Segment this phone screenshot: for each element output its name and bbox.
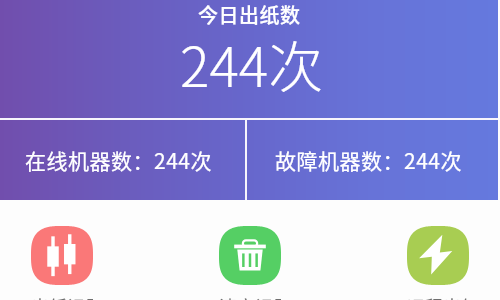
staticText: 244次 — [180, 23, 324, 103]
staticText: 清空记录 — [219, 293, 281, 300]
button[interactable]: 故障机器数：244次 — [247, 120, 498, 200]
button[interactable]: 远程出纸 — [407, 200, 469, 300]
staticText: 出纸记录 — [31, 293, 93, 300]
staticText: 今日出纸数 — [198, 0, 301, 29]
staticText: 远程出纸 — [407, 293, 469, 300]
button[interactable]: 在线机器数：244次 — [0, 120, 245, 200]
staticText: 在线机器数：244次 — [25, 145, 212, 175]
button[interactable]: 清空记录 — [219, 200, 281, 300]
staticText: 故障机器数：244次 — [275, 145, 462, 175]
button[interactable]: 出纸记录 — [31, 200, 93, 300]
